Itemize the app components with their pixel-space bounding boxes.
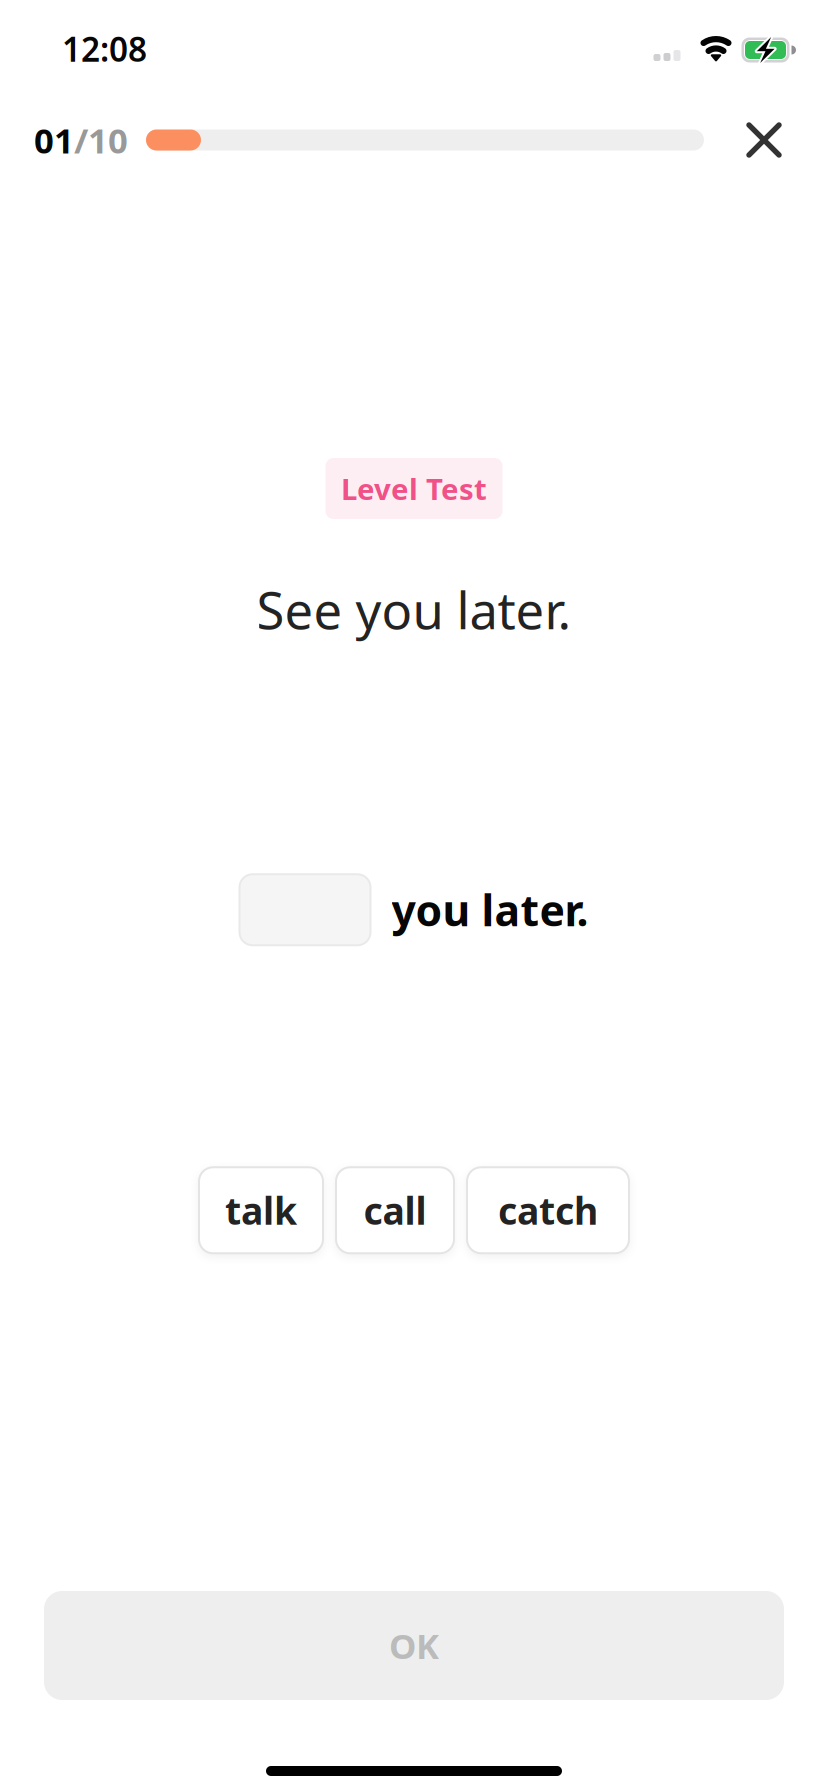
- staticText: call: [363, 1185, 426, 1235]
- staticText: Level Test: [341, 469, 487, 508]
- button[interactable]: Close: [737, 113, 791, 167]
- staticText: /10: [74, 117, 128, 163]
- button[interactable]: talk: [199, 1167, 323, 1253]
- button[interactable]: OK: [44, 1591, 784, 1700]
- button[interactable]: catch: [467, 1167, 629, 1253]
- staticText: OK: [389, 1622, 439, 1668]
- staticText: See you later.: [256, 576, 571, 643]
- button[interactable]: call: [336, 1167, 454, 1253]
- staticText: 01: [34, 117, 74, 163]
- staticText: catch: [498, 1185, 598, 1235]
- staticText: 12:08: [62, 27, 147, 71]
- staticText: you later.: [391, 881, 588, 938]
- staticText: talk: [225, 1185, 297, 1235]
